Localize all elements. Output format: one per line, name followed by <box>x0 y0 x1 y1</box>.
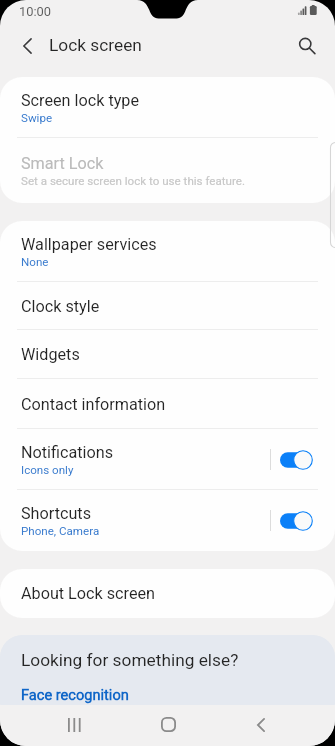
button[interactable]: Wallpaper services <box>0 221 335 282</box>
staticText: Phone, Camera <box>21 524 100 538</box>
staticText: Notifications <box>21 443 114 462</box>
button[interactable]: Back <box>215 705 307 746</box>
button[interactable]: Recent apps <box>28 705 120 746</box>
button[interactable]: Clock style <box>0 282 335 330</box>
staticText: None <box>21 255 49 269</box>
button[interactable]: Contact information <box>0 379 335 429</box>
staticText: Swipe <box>21 111 53 125</box>
staticText: Contact information <box>21 395 166 414</box>
button[interactable]: Shortcuts on <box>280 511 312 531</box>
button[interactable]: Notifications on <box>280 450 312 470</box>
button[interactable]: Home <box>122 705 214 746</box>
staticText: Screen lock type <box>21 91 140 110</box>
button[interactable]: About Lock screen <box>0 569 335 618</box>
staticText: Set a secure screen lock to use this fea… <box>21 174 246 188</box>
button[interactable]: Navigate up <box>9 28 45 64</box>
button[interactable]: Search <box>288 28 324 64</box>
button[interactable]: Face recognition <box>21 686 129 703</box>
button[interactable]: Screen lock type <box>0 77 335 138</box>
staticText: Lock screen <box>49 35 142 55</box>
staticText: Widgets <box>21 345 80 364</box>
staticText: Looking for something else? <box>21 650 239 670</box>
staticText: Wallpaper services <box>21 235 157 254</box>
staticText: Icons only <box>21 463 74 477</box>
staticText: About Lock screen <box>21 584 156 603</box>
button[interactable]: Widgets <box>0 330 335 379</box>
button[interactable]: Shortcuts <box>0 490 335 551</box>
staticText: Clock style <box>21 297 100 316</box>
staticText: 10:00 <box>19 4 52 19</box>
button[interactable]: Notifications <box>0 429 335 490</box>
button[interactable]: Smart Lock <box>0 138 335 203</box>
staticText: Shortcuts <box>21 504 91 523</box>
staticText: Smart Lock <box>21 154 104 173</box>
